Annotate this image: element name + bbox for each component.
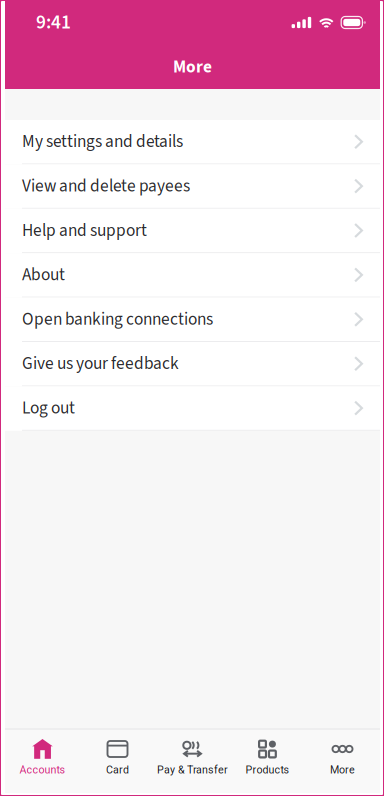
button[interactable]: Give us your feedback: [5, 342, 380, 386]
staticText: Open banking connections: [22, 307, 213, 332]
staticText: Accounts: [19, 763, 65, 776]
button[interactable]: Open banking connections: [5, 298, 380, 342]
staticText: More: [173, 55, 212, 79]
staticText: Log out: [22, 396, 75, 420]
staticText: Pay & Transfer: [157, 763, 228, 776]
button[interactable]: Accounts: [5, 729, 80, 793]
button[interactable]: My settings and details: [5, 120, 380, 164]
button[interactable]: Help and support: [5, 209, 380, 253]
button[interactable]: Pay & Transfer: [155, 729, 230, 793]
staticText: Help and support: [22, 218, 147, 243]
button[interactable]: Card: [80, 729, 155, 793]
button[interactable]: View and delete payees: [5, 164, 380, 209]
staticText: 9:41: [36, 9, 71, 36]
staticText: View and delete payees: [22, 174, 190, 198]
button[interactable]: Log out: [5, 386, 380, 431]
staticText: About: [22, 263, 65, 287]
staticText: Card: [106, 763, 129, 776]
staticText: Give us your feedback: [22, 351, 179, 376]
staticText: Products: [245, 763, 289, 776]
button[interactable]: About: [5, 253, 380, 298]
staticText: My settings and details: [22, 129, 183, 154]
button[interactable]: More: [305, 729, 380, 793]
staticText: More: [330, 763, 355, 776]
button[interactable]: Products: [230, 729, 305, 793]
